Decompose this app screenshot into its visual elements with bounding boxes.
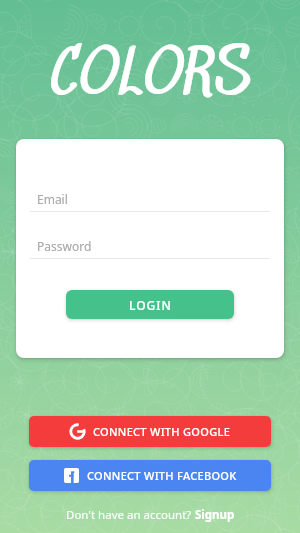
staticText: Email [37, 191, 68, 207]
staticText: CONNECT WITH GOOGLE [93, 424, 231, 439]
button[interactable]: LOGIN [66, 290, 234, 319]
staticText: LOGIN [129, 297, 172, 313]
staticText: Password [37, 238, 92, 254]
button[interactable]: Google [29, 416, 271, 447]
button[interactable]: Password [30, 234, 270, 258]
staticText: COLORS [49, 39, 251, 115]
staticText: CONNECT WITH FACEBOOK [87, 468, 237, 483]
staticText: Signup [195, 507, 235, 523]
button[interactable]: Email [30, 187, 270, 211]
other: Google [70, 424, 85, 439]
button[interactable]: Facebook [29, 460, 271, 491]
staticText: Don't have an account? [66, 507, 195, 523]
other: Facebook [64, 468, 79, 483]
button[interactable]: Don't have an account? [66, 507, 235, 523]
